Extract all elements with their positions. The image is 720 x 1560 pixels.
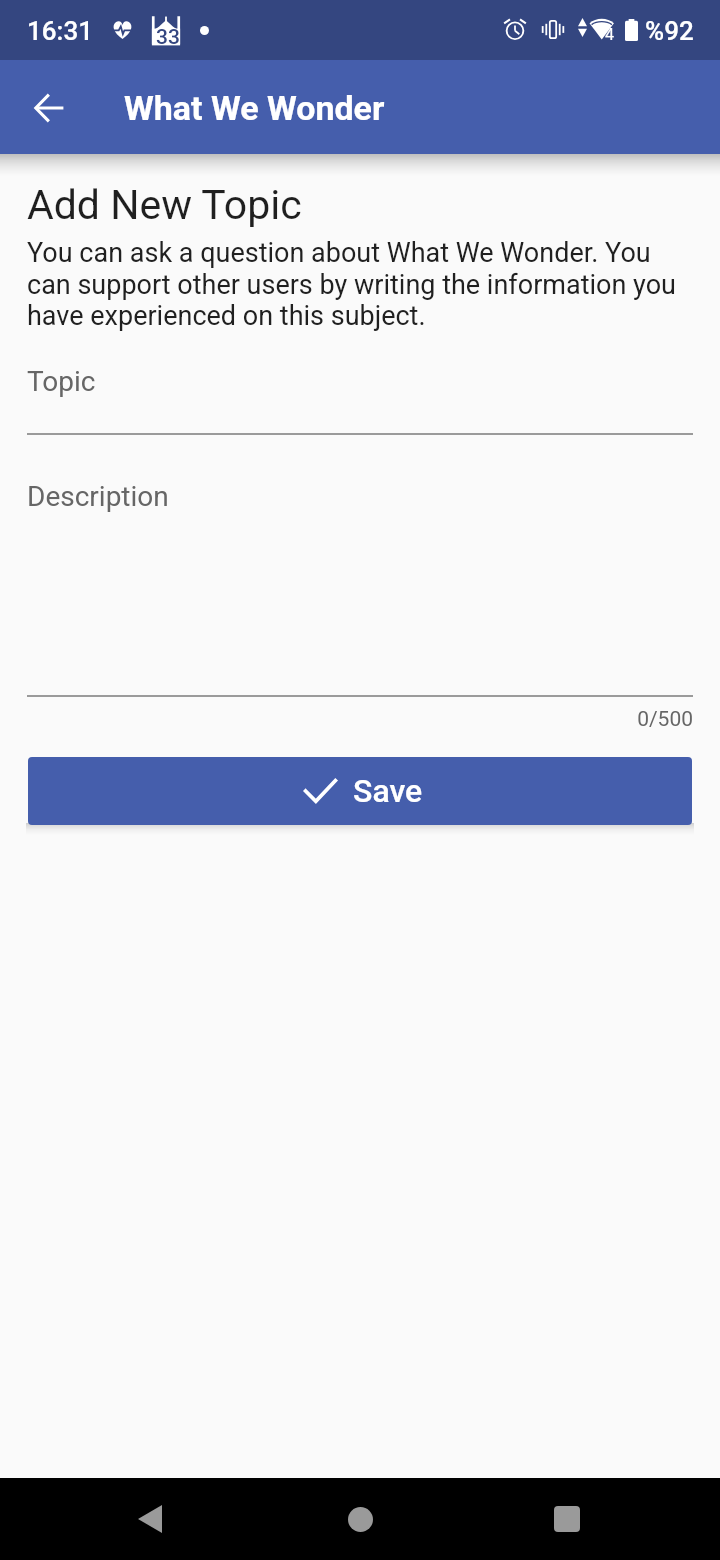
button[interactable]: Back: [96, 1492, 204, 1546]
button[interactable]: Recent apps: [513, 1492, 621, 1546]
staticText: Add New Topic: [27, 181, 302, 229]
staticText: 16:31: [27, 16, 93, 46]
staticText: %92: [645, 16, 694, 46]
button[interactable]: Back: [15, 74, 83, 142]
staticText: Description: [27, 480, 169, 513]
staticText: You can ask a question about What We Won…: [27, 237, 693, 331]
button[interactable]: Home: [306, 1492, 414, 1546]
staticText: 4: [605, 25, 614, 44]
staticText: 0/500: [27, 707, 693, 732]
staticText: 33: [156, 25, 180, 50]
button[interactable]: Save: [28, 757, 692, 825]
staticText: Save: [353, 772, 423, 810]
staticText: Topic: [27, 365, 96, 398]
staticText: What We Wonder: [124, 88, 385, 128]
